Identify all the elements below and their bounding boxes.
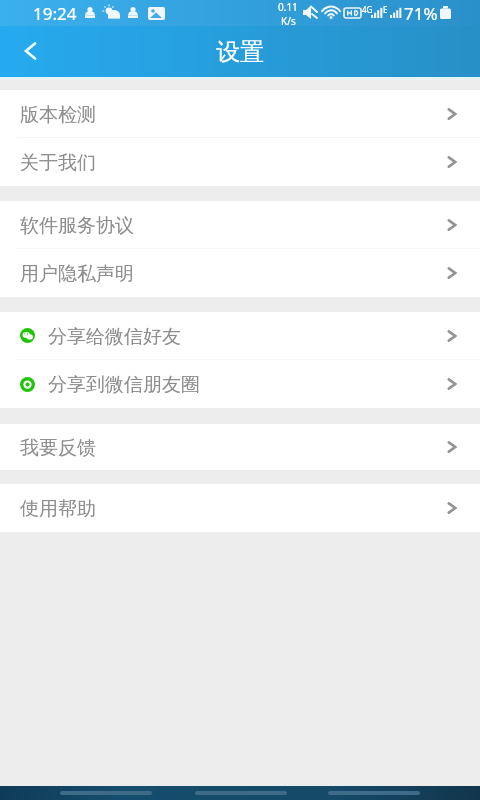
staticText: 4G: [362, 4, 373, 15]
staticText: 设置: [216, 37, 264, 67]
button[interactable]: 分享给微信好友: [0, 312, 480, 360]
staticText: 关于我们: [20, 151, 96, 175]
button[interactable]: 使用帮助: [0, 484, 480, 532]
staticText: 版本检测: [20, 103, 96, 127]
staticText: 分享到微信朋友圈: [48, 373, 200, 397]
button[interactable]: Back: [60, 786, 152, 800]
staticText: 0.11: [278, 0, 298, 14]
staticText: 19:24: [33, 2, 77, 25]
button[interactable]: 用户隐私声明: [0, 249, 480, 297]
staticText: K/s: [281, 14, 296, 26]
staticText: E: [383, 4, 388, 15]
staticText: 分享给微信好友: [48, 325, 181, 349]
staticText: 使用帮助: [20, 497, 96, 521]
staticText: 软件服务协议: [20, 214, 134, 238]
button[interactable]: 我要反馈: [0, 424, 480, 470]
button[interactable]: 软件服务协议: [0, 201, 480, 249]
button[interactable]: Recent apps: [328, 786, 420, 800]
button[interactable]: 关于我们: [0, 138, 480, 186]
button[interactable]: 版本检测: [0, 90, 480, 138]
staticText: 71%: [404, 2, 438, 25]
staticText: 我要反馈: [20, 436, 96, 460]
button[interactable]: Home: [195, 786, 287, 800]
button[interactable]: 分享到微信朋友圈: [0, 360, 480, 408]
button[interactable]: Back: [0, 26, 58, 77]
staticText: 用户隐私声明: [20, 262, 134, 286]
